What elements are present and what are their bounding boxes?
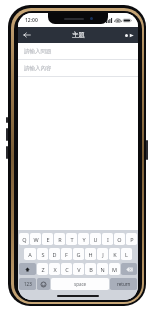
button[interactable]: K [109,248,120,260]
staticText: 請輸入內容 [24,65,52,72]
staticText: return [117,281,131,287]
staticText: H [88,251,93,258]
button[interactable]: return [110,278,137,290]
staticText: 請輸入問題 [24,48,52,55]
staticText: N [100,266,105,273]
button[interactable]: B [85,263,96,275]
staticText: B [89,266,93,273]
staticText: space [74,281,87,287]
staticText: F [65,251,68,258]
staticText: 12:00 [25,17,38,24]
button[interactable]: Backspace [121,263,137,275]
button[interactable]: Send [125,27,134,43]
button[interactable]: J [97,248,108,260]
button[interactable]: Back [18,27,36,43]
button[interactable]: U [90,233,101,245]
button[interactable]: Y [78,233,89,245]
staticText: M [112,266,117,273]
staticText: S [41,251,45,258]
staticText: E [46,236,50,243]
staticText: C [65,266,69,273]
staticText: 123 [24,281,32,287]
staticText: U [93,236,98,243]
button[interactable]: V [73,263,84,275]
button[interactable]: C [61,263,72,275]
button[interactable]: P [126,233,137,245]
button[interactable]: H [85,248,96,260]
button[interactable]: Q [19,233,29,245]
staticText: 主題 [72,31,85,39]
button[interactable]: O [114,233,125,245]
staticText: D [52,251,57,258]
button[interactable]: 123 [19,278,36,290]
button[interactable]: 請輸入內容 [18,60,138,77]
staticText: I [107,236,109,243]
staticText: Y [82,236,86,243]
staticText: X [53,266,57,273]
button[interactable]: M [109,263,120,275]
button[interactable]: Z [37,263,48,275]
button[interactable]: E [42,233,53,245]
button[interactable]: A [24,248,36,260]
button[interactable]: W [30,233,41,245]
staticText: L [125,251,128,258]
button[interactable]: space [51,278,109,290]
staticText: T [70,236,74,243]
button[interactable]: X [49,263,60,275]
button[interactable]: R [54,233,65,245]
staticText: P [130,236,134,243]
button[interactable]: N [97,263,108,275]
button[interactable]: 請輸入問題 [18,43,138,60]
button[interactable]: I [102,233,113,245]
staticText: O [117,236,122,243]
staticText: V [77,266,81,273]
button[interactable]: T [66,233,77,245]
button[interactable]: G [73,248,84,260]
staticText: K [113,251,117,258]
staticText: Z [41,266,45,273]
button[interactable]: L [121,248,132,260]
staticText: J [102,251,104,258]
button[interactable]: S [37,248,48,260]
staticText: G [76,251,81,258]
staticText: A [28,251,32,258]
button[interactable]: D [49,248,60,260]
button[interactable]: F [61,248,72,260]
staticText: Q [22,236,27,243]
staticText: W [33,236,39,243]
button[interactable]: Emoji [37,278,50,290]
staticText: R [58,236,62,243]
button[interactable]: Shift [19,263,36,275]
